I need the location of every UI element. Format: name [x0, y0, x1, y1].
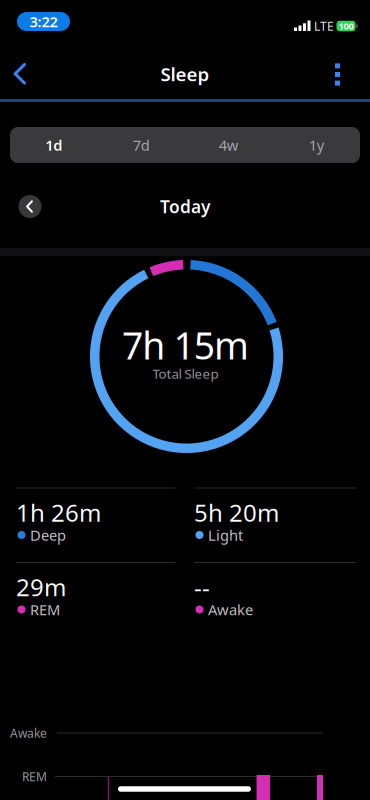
- staticText: 1h 26m: [16, 497, 101, 528]
- button[interactable]: Back: [1, 51, 38, 96]
- staticText: Deep: [30, 525, 66, 545]
- staticText: 1y: [309, 135, 324, 155]
- staticText: Awake: [10, 725, 47, 741]
- button[interactable]: 1d: [10, 127, 97, 163]
- button[interactable]: 7d: [97, 127, 185, 163]
- staticText: LTE: [314, 18, 334, 34]
- staticText: 7d: [133, 135, 150, 155]
- staticText: 1d: [45, 135, 62, 155]
- staticText: REM: [22, 768, 47, 784]
- staticText: 4w: [219, 135, 239, 155]
- staticText: Today: [160, 195, 210, 218]
- staticText: 3:22: [29, 12, 57, 31]
- button[interactable]: 1y: [272, 127, 360, 163]
- button[interactable]: 4w: [185, 127, 272, 163]
- staticText: --: [194, 571, 210, 603]
- button[interactable]: Previous day: [18, 195, 41, 218]
- button[interactable]: 3:22: [17, 12, 70, 31]
- staticText: REM: [30, 600, 60, 619]
- staticText: 5h 20m: [194, 497, 279, 528]
- staticText: Total Sleep: [152, 365, 218, 382]
- button[interactable]: More options: [325, 53, 350, 96]
- staticText: Awake: [208, 600, 253, 619]
- staticText: 29m: [16, 571, 66, 603]
- staticText: 100: [338, 20, 353, 32]
- staticText: Sleep: [160, 62, 209, 86]
- staticText: 7h 15m: [122, 320, 249, 370]
- staticText: Light: [208, 525, 243, 545]
